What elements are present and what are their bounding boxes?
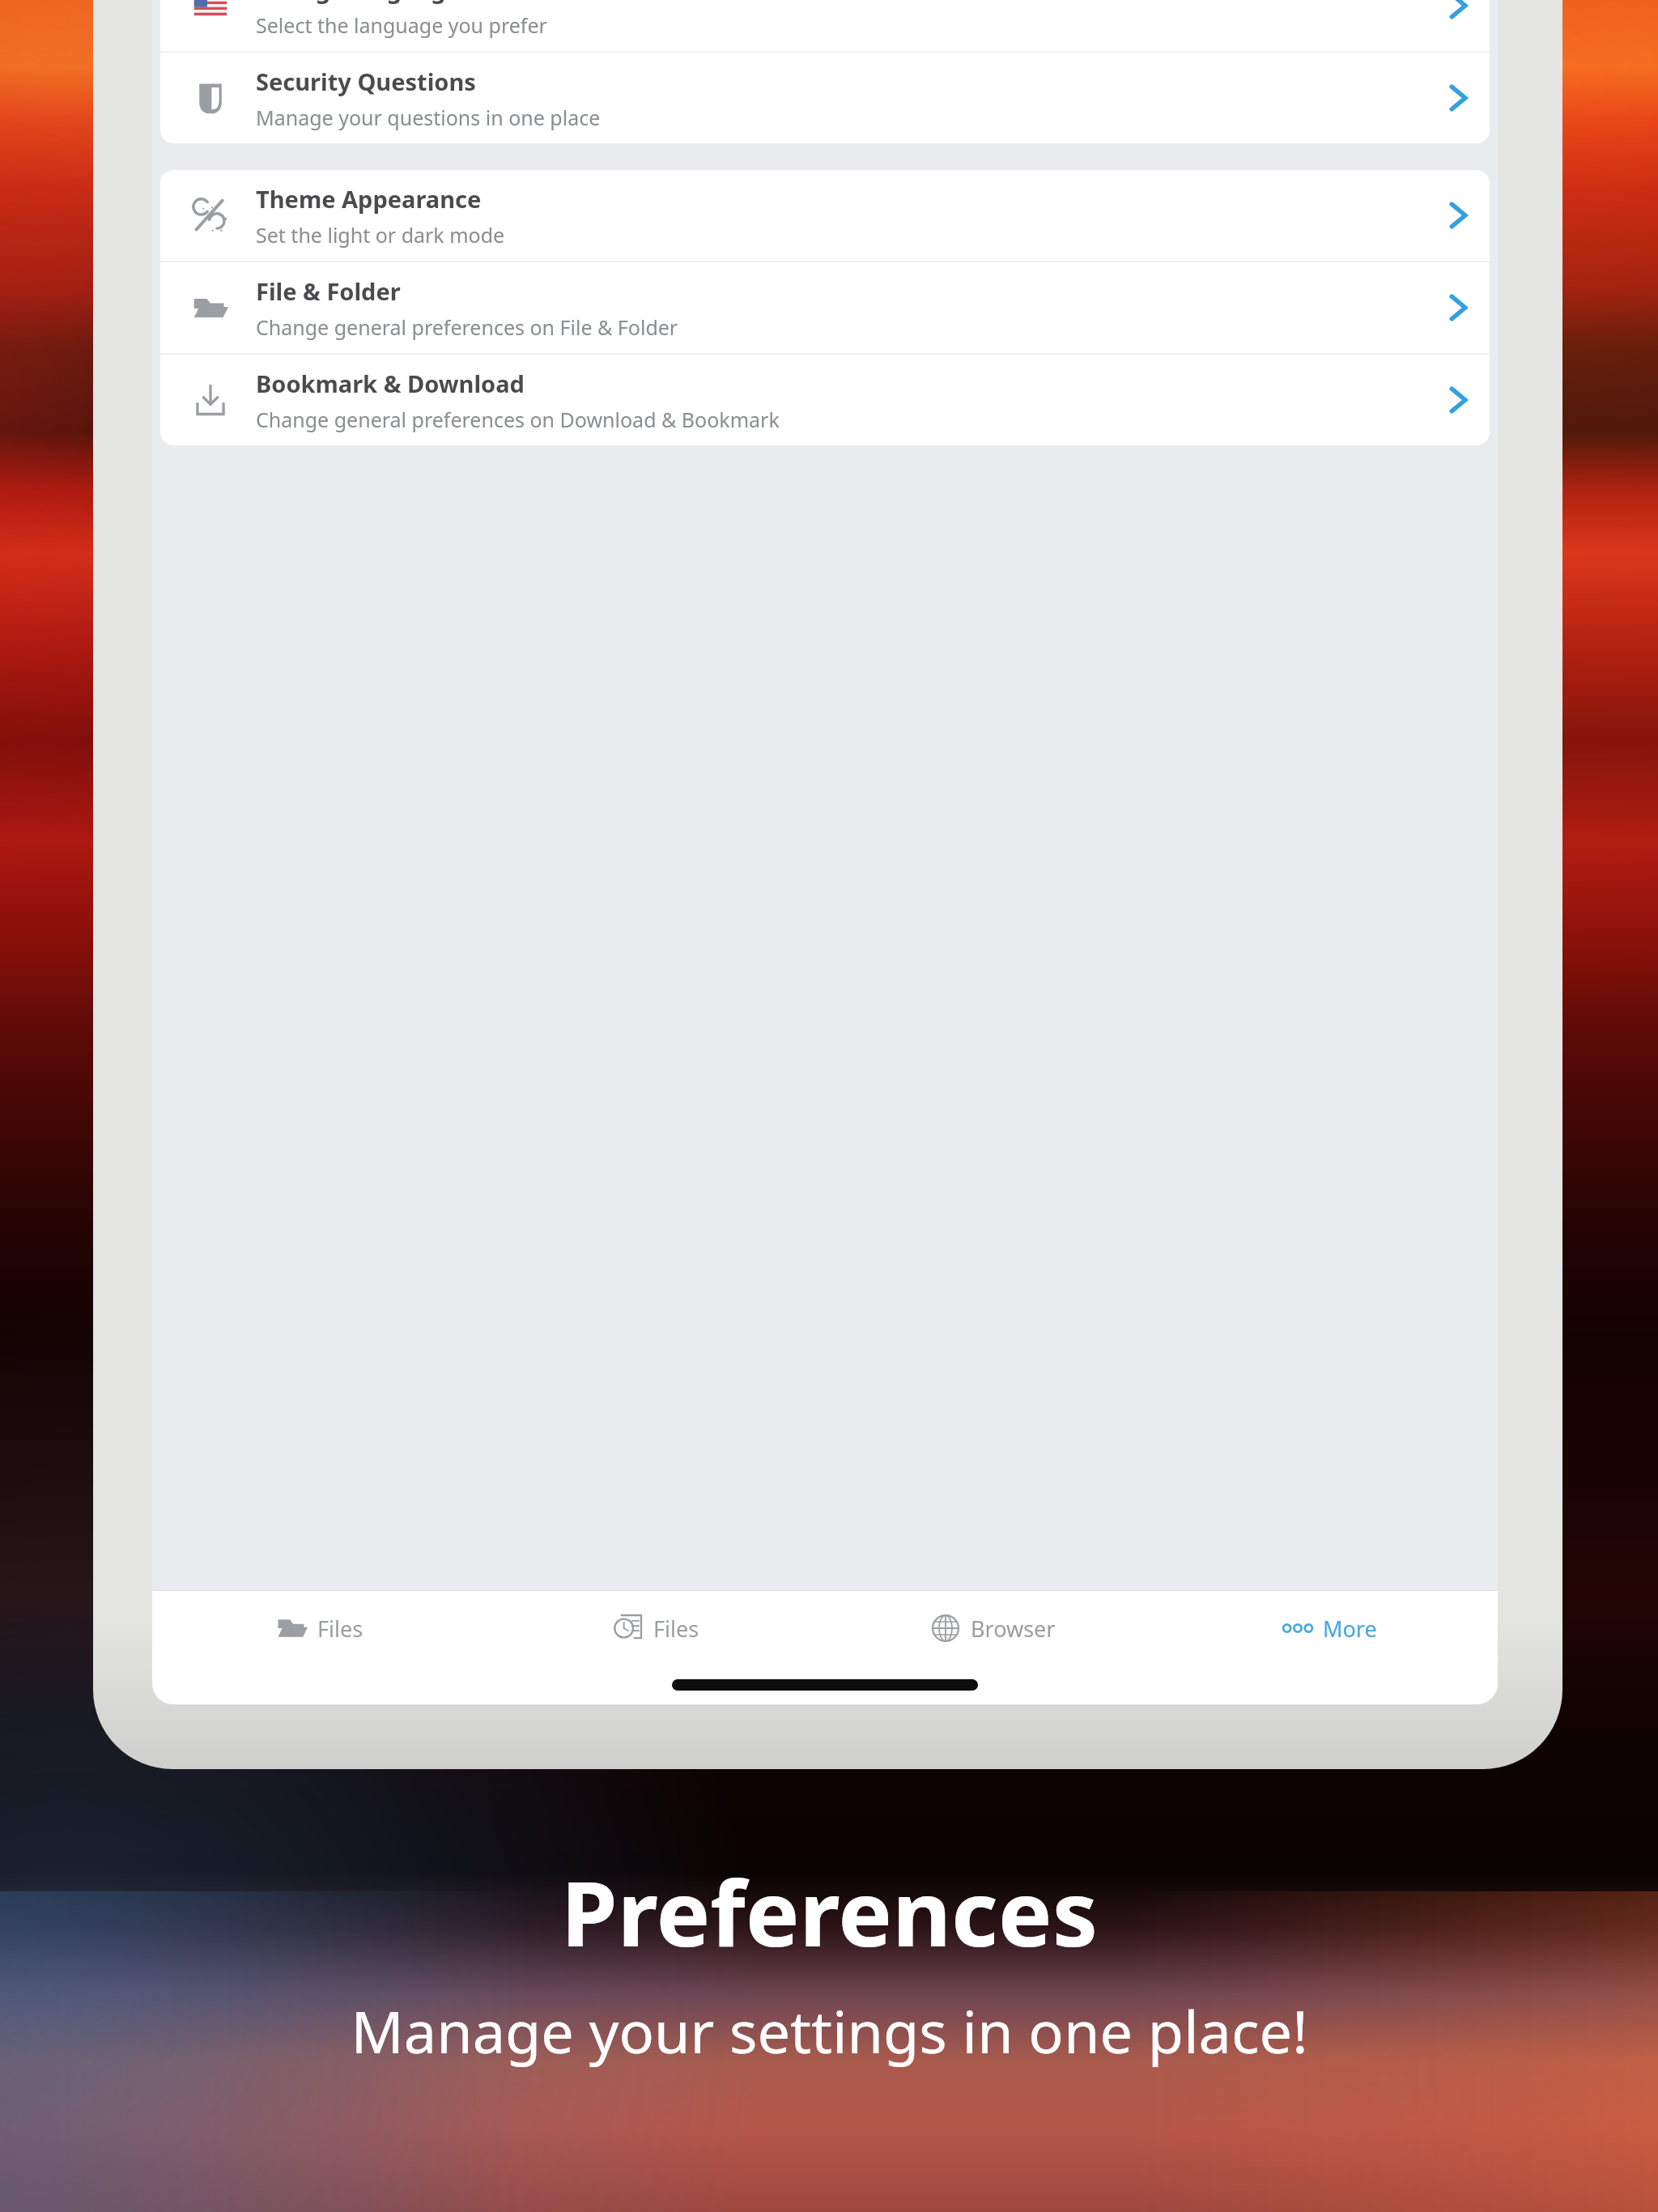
staticText: Files: [653, 1614, 699, 1644]
staticText: Security Questions: [256, 66, 476, 97]
staticText: Preferences: [561, 1849, 1098, 1973]
button[interactable]: Security Questions: [160, 53, 1490, 143]
button[interactable]: Theme Appearance: [160, 170, 1490, 261]
button[interactable]: Browser: [824, 1591, 1161, 1665]
staticText: Bookmark & Download: [256, 368, 525, 399]
staticText: Change language: [256, 0, 460, 5]
button[interactable]: Change language: [160, 0, 1490, 51]
staticText: Files: [317, 1614, 363, 1644]
button[interactable]: File & Folder: [160, 262, 1490, 353]
staticText: Manage your questions in one place: [256, 104, 601, 131]
staticText: More: [1323, 1614, 1377, 1644]
staticText: Change general preferences on File & Fol…: [256, 313, 678, 341]
staticText: File & Folder: [256, 275, 401, 307]
button[interactable]: Files: [488, 1591, 824, 1665]
button[interactable]: Files: [152, 1591, 488, 1665]
staticText: Set the light or dark mode: [256, 221, 505, 249]
button[interactable]: Bookmark & Download: [160, 355, 1490, 445]
staticText: Change general preferences on Download &…: [256, 406, 780, 433]
button[interactable]: More: [1161, 1591, 1498, 1665]
staticText: Select the language you prefer: [256, 11, 547, 39]
staticText: Theme Appearance: [256, 183, 482, 215]
staticText: Browser: [971, 1614, 1056, 1644]
staticText: Manage your settings in one place!: [351, 1991, 1308, 2070]
